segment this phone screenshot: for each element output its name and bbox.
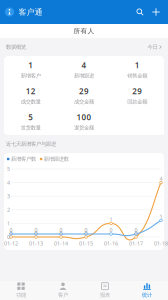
staticText: 0 bbox=[34, 226, 37, 234]
staticText: 29 bbox=[79, 86, 89, 96]
staticText: 5 bbox=[7, 165, 10, 173]
staticText: 0 bbox=[59, 229, 62, 237]
staticText: 回款金额 bbox=[127, 98, 147, 105]
staticText: 3 bbox=[7, 193, 10, 200]
staticText: 1 bbox=[135, 60, 140, 70]
button[interactable]: Add bbox=[148, 1, 164, 23]
staticText: 今日 bbox=[147, 44, 157, 50]
button[interactable]: 报表 bbox=[84, 280, 126, 300]
button[interactable]: 5 bbox=[4, 108, 57, 134]
staticText: 0 bbox=[134, 226, 137, 234]
staticText: 新增客户数 bbox=[11, 156, 36, 162]
button[interactable]: 统计 bbox=[126, 280, 168, 300]
button[interactable]: 所有人 bbox=[0, 24, 168, 38]
staticText: 0 bbox=[34, 229, 37, 237]
staticText: 1 bbox=[28, 60, 33, 70]
staticText: 客户 bbox=[58, 292, 68, 298]
staticText: 0 bbox=[134, 229, 137, 237]
staticText: 发货数量 bbox=[21, 124, 41, 131]
staticText: 100 bbox=[76, 112, 91, 122]
staticText: 报表 bbox=[100, 292, 110, 298]
button[interactable]: 4 bbox=[57, 56, 111, 82]
staticText: 01-14 bbox=[54, 240, 68, 247]
button[interactable]: Search bbox=[132, 1, 148, 23]
staticText: 销售金额 bbox=[127, 72, 147, 79]
staticText: 新增跟进数 bbox=[44, 156, 69, 162]
staticText: 4 bbox=[159, 175, 162, 182]
staticText: 成交金额 bbox=[74, 98, 94, 105]
staticText: 数据概览 bbox=[6, 44, 26, 50]
staticText: 0 bbox=[7, 233, 10, 241]
staticText: 01-18 bbox=[154, 240, 168, 247]
staticText: 0 bbox=[9, 226, 12, 234]
staticText: 01-13 bbox=[29, 240, 43, 247]
button[interactable]: 1 bbox=[4, 56, 57, 82]
button[interactable]: 100 bbox=[57, 108, 111, 134]
staticText: 成交数量 bbox=[21, 98, 41, 105]
staticText: 4 bbox=[7, 179, 10, 186]
staticText: 01-12 bbox=[4, 240, 18, 247]
staticText: 2 bbox=[7, 206, 10, 213]
staticText: 1 bbox=[7, 220, 10, 227]
button[interactable]: 客户 bbox=[42, 280, 84, 300]
button[interactable]: 1 bbox=[111, 56, 164, 82]
button[interactable]: 29 bbox=[57, 82, 111, 108]
staticText: 统计 bbox=[142, 292, 152, 298]
staticText: 0 bbox=[109, 226, 112, 234]
staticText: 功能 bbox=[16, 292, 26, 298]
staticText: 01-17 bbox=[129, 240, 143, 247]
staticText: 01-15 bbox=[79, 240, 93, 247]
staticText: 0 bbox=[84, 226, 87, 234]
staticText: 所有人 bbox=[73, 27, 94, 35]
button[interactable]: 12 bbox=[4, 82, 57, 108]
staticText: 1 bbox=[159, 213, 162, 220]
staticText: 4 bbox=[81, 60, 86, 70]
staticText: 退货金额 bbox=[74, 124, 94, 131]
staticText: 近七天新增客户与跟进 bbox=[6, 141, 56, 147]
staticText: 1 bbox=[109, 216, 112, 223]
staticText: 新增客户 bbox=[21, 72, 41, 79]
staticText: 12 bbox=[26, 86, 36, 96]
button[interactable]: 今日 bbox=[147, 44, 162, 50]
button[interactable]: 29 bbox=[111, 82, 164, 108]
staticText: 0 bbox=[84, 229, 87, 237]
staticText: 客户通 bbox=[18, 7, 42, 17]
button[interactable]: 功能 bbox=[0, 280, 42, 300]
staticText: 01-16 bbox=[104, 240, 118, 247]
staticText: 0 bbox=[59, 226, 62, 234]
staticText: 5 bbox=[28, 112, 33, 122]
staticText: 新增跟进 bbox=[74, 72, 94, 79]
staticText: 29 bbox=[132, 86, 142, 96]
staticText: 0 bbox=[9, 229, 12, 237]
